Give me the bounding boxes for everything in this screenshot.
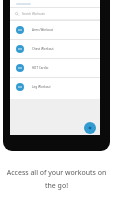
button[interactable]: Leg Workout <box>10 78 100 96</box>
button[interactable]: HIIT Cardio <box>10 59 100 77</box>
staticText: Arms Workout <box>32 28 53 32</box>
button[interactable]: Search Workouts <box>10 8 100 19</box>
staticText: Access all of your workouts on the go! <box>6 168 107 190</box>
staticText: Search Workouts <box>22 12 45 16</box>
button[interactable]: Arms Workout <box>10 21 100 39</box>
staticText: Leg Workout <box>32 85 51 89</box>
staticText: HIIT Cardio <box>32 66 49 70</box>
button[interactable]: Chest Workout <box>10 40 100 58</box>
staticText: Chest Workout <box>32 47 54 51</box>
button[interactable]: Add workout <box>84 122 96 134</box>
